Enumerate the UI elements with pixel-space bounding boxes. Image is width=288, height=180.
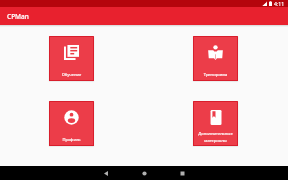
staticText: Обучение — [49, 72, 94, 78]
staticText: Профиль — [49, 137, 94, 143]
staticText: CPMan — [7, 12, 29, 21]
button[interactable]: Home — [125, 166, 163, 180]
staticText: Тренировка — [193, 72, 238, 78]
staticText: 4:11 — [274, 0, 285, 7]
button[interactable]: Профиль — [49, 101, 94, 146]
button[interactable]: Тренировка — [193, 36, 238, 81]
button[interactable]: Дополнительные материалы — [193, 101, 238, 146]
button[interactable]: Back — [87, 166, 125, 180]
staticText: Дополнительные материалы — [193, 131, 238, 143]
button[interactable]: Обучение — [49, 36, 94, 81]
button[interactable]: Recent apps — [163, 166, 201, 180]
